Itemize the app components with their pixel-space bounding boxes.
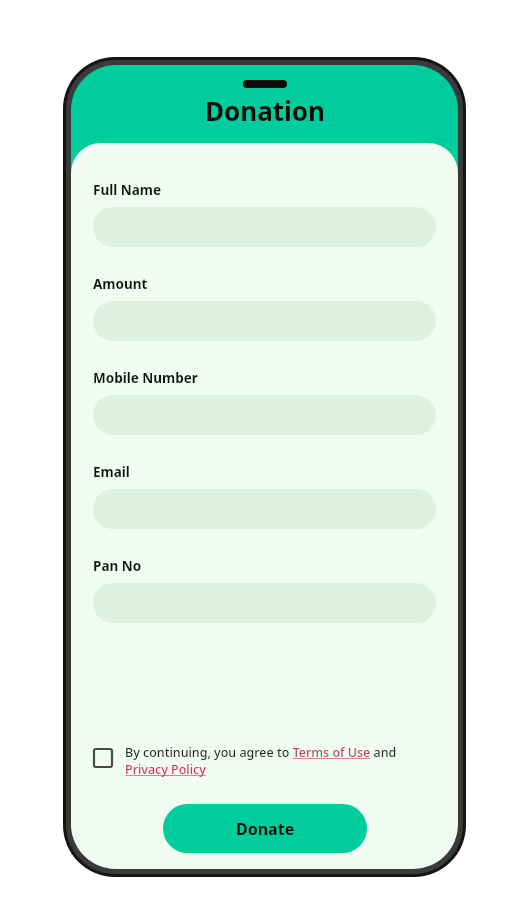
staticText: Pan No	[93, 557, 142, 575]
staticText: Mobile Number	[93, 369, 198, 387]
staticText: Donation	[205, 93, 325, 128]
staticText: Full Name	[93, 181, 162, 199]
staticText: By continuing, you agree to Terms of Use…	[125, 744, 436, 778]
button[interactable]: Donate	[163, 804, 367, 853]
button[interactable]: Accept terms checkbox	[93, 748, 113, 768]
staticText: Donate	[236, 818, 295, 840]
staticText: Amount	[93, 275, 148, 293]
button[interactable]: Accept terms checkbox	[93, 744, 436, 778]
staticText: Email	[93, 463, 130, 481]
